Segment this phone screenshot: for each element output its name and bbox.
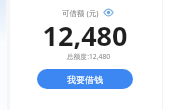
button[interactable]: 可借额 (元) xyxy=(62,7,114,18)
button[interactable]: 我要借钱 xyxy=(37,69,133,89)
staticText: 我要借钱 xyxy=(67,74,103,85)
button[interactable]: Toggle amount visibility xyxy=(103,7,114,18)
staticText: 12,480 xyxy=(12,17,158,54)
staticText: 总额度:12,480 xyxy=(19,52,158,61)
staticText: 可借额 (元) xyxy=(62,8,99,18)
